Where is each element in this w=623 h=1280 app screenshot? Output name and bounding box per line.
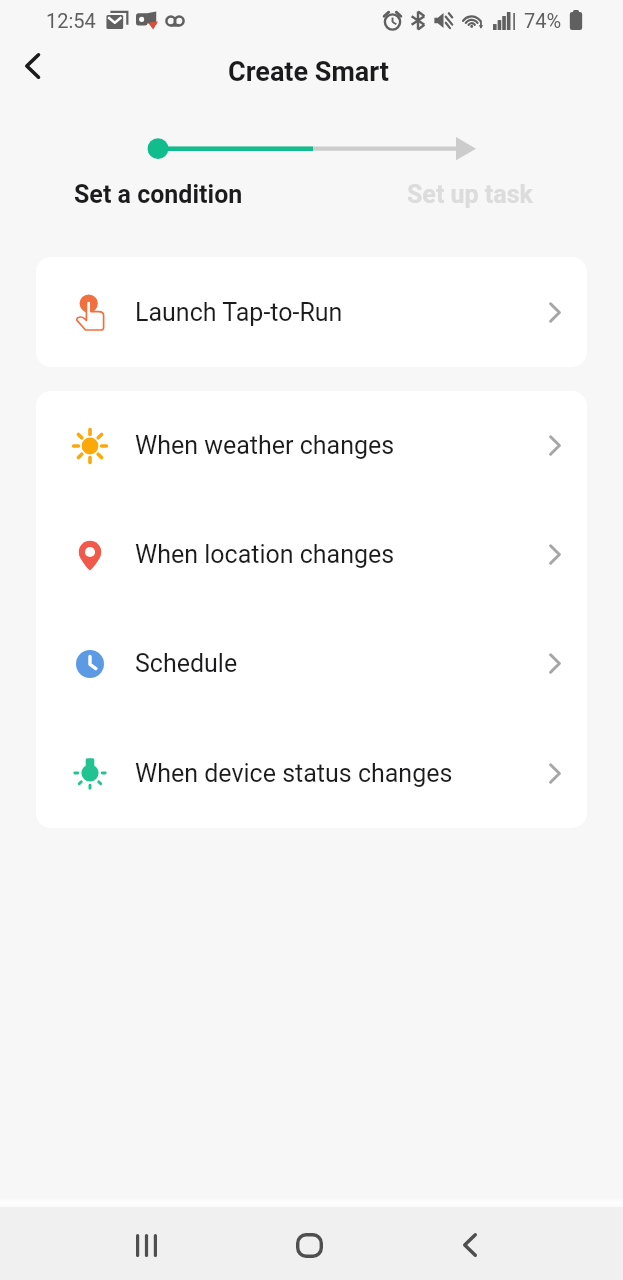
staticText: Schedule — [135, 649, 238, 678]
button[interactable]: Launch Tap-to-Run — [36, 257, 587, 367]
button[interactable]: When location changes — [36, 500, 587, 609]
button[interactable]: Navigate back — [10, 44, 54, 88]
button[interactable]: Back — [439, 1214, 501, 1276]
button[interactable]: Schedule — [36, 609, 587, 718]
staticText: 12:54 — [46, 9, 96, 32]
staticText: Set up task — [407, 180, 533, 209]
staticText: When weather changes — [135, 431, 395, 460]
button[interactable]: Recent apps — [115, 1214, 177, 1276]
button[interactable]: Home — [278, 1214, 340, 1276]
staticText: When device status changes — [135, 759, 453, 788]
staticText: 74% — [524, 9, 562, 32]
button[interactable]: When weather changes — [36, 391, 587, 500]
button[interactable]: When device status changes — [36, 718, 587, 828]
staticText: When location changes — [135, 540, 395, 569]
staticText: Create Smart — [228, 56, 389, 88]
staticText: Set a condition — [74, 180, 243, 209]
staticText: Launch Tap-to-Run — [135, 298, 343, 327]
